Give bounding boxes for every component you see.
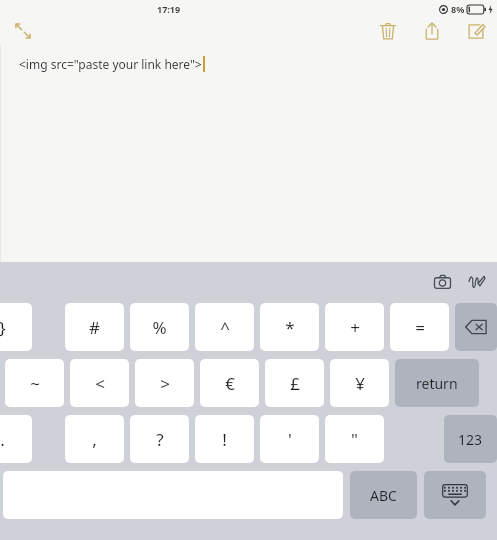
button[interactable]: " (325, 415, 384, 463)
button[interactable]: ^ (195, 303, 254, 351)
button[interactable]: Expand note (10, 18, 36, 44)
staticText: * (285, 316, 295, 339)
staticText: " (351, 428, 358, 451)
button[interactable]: New note (463, 18, 489, 44)
staticText: ¥ (355, 372, 365, 395)
staticText: 17:19 (157, 3, 181, 15)
staticText: ^ (220, 316, 230, 339)
button[interactable]: € (200, 359, 259, 407)
button[interactable]: ~ (5, 359, 64, 407)
staticText: = (415, 316, 425, 339)
button[interactable]: , (65, 415, 124, 463)
button[interactable]: <img src="paste your link here"> (0, 45, 497, 262)
staticText: 8% (451, 3, 465, 15)
button[interactable]: < (70, 359, 129, 407)
button[interactable]: > (135, 359, 194, 407)
button[interactable]: return (395, 359, 479, 407)
staticText: . (0, 428, 5, 451)
staticText: ? (156, 428, 164, 451)
button[interactable]: % (130, 303, 189, 351)
button[interactable]: ¥ (330, 359, 389, 407)
button[interactable]: . (0, 415, 32, 463)
staticText: £ (290, 372, 300, 395)
staticText: # (89, 316, 100, 339)
staticText: ~ (30, 372, 40, 395)
staticText: } (0, 316, 6, 339)
staticText: return (416, 374, 458, 393)
button[interactable]: ' (260, 415, 319, 463)
button[interactable]: = (390, 303, 449, 351)
staticText: ! (222, 428, 227, 451)
button[interactable]: + (325, 303, 384, 351)
button[interactable]: Delete note (375, 18, 401, 44)
staticText: ABC (370, 486, 397, 505)
button[interactable]: £ (265, 359, 324, 407)
button[interactable]: ABC (350, 471, 417, 519)
button[interactable]: } (0, 303, 32, 351)
button[interactable]: # (65, 303, 124, 351)
button[interactable]: Handwriting input (463, 269, 489, 295)
staticText: 123 (458, 430, 483, 449)
button[interactable]: Backspace (455, 303, 497, 351)
staticText: <img src="paste your link here"> (19, 56, 202, 72)
button[interactable]: * (260, 303, 319, 351)
button[interactable]: ! (195, 415, 254, 463)
button[interactable]: Hide keyboard (424, 471, 486, 519)
staticText: + (350, 316, 360, 339)
button[interactable]: 123 (444, 415, 497, 463)
button[interactable]: Insert photo (429, 269, 455, 295)
staticText: % (152, 316, 167, 339)
staticText: > (160, 372, 170, 395)
button[interactable]: Share note (419, 18, 445, 44)
staticText: € (225, 372, 235, 395)
button[interactable]: ? (130, 415, 189, 463)
staticText: ' (288, 428, 292, 451)
staticText: , (92, 428, 97, 451)
staticText: < (95, 372, 105, 395)
